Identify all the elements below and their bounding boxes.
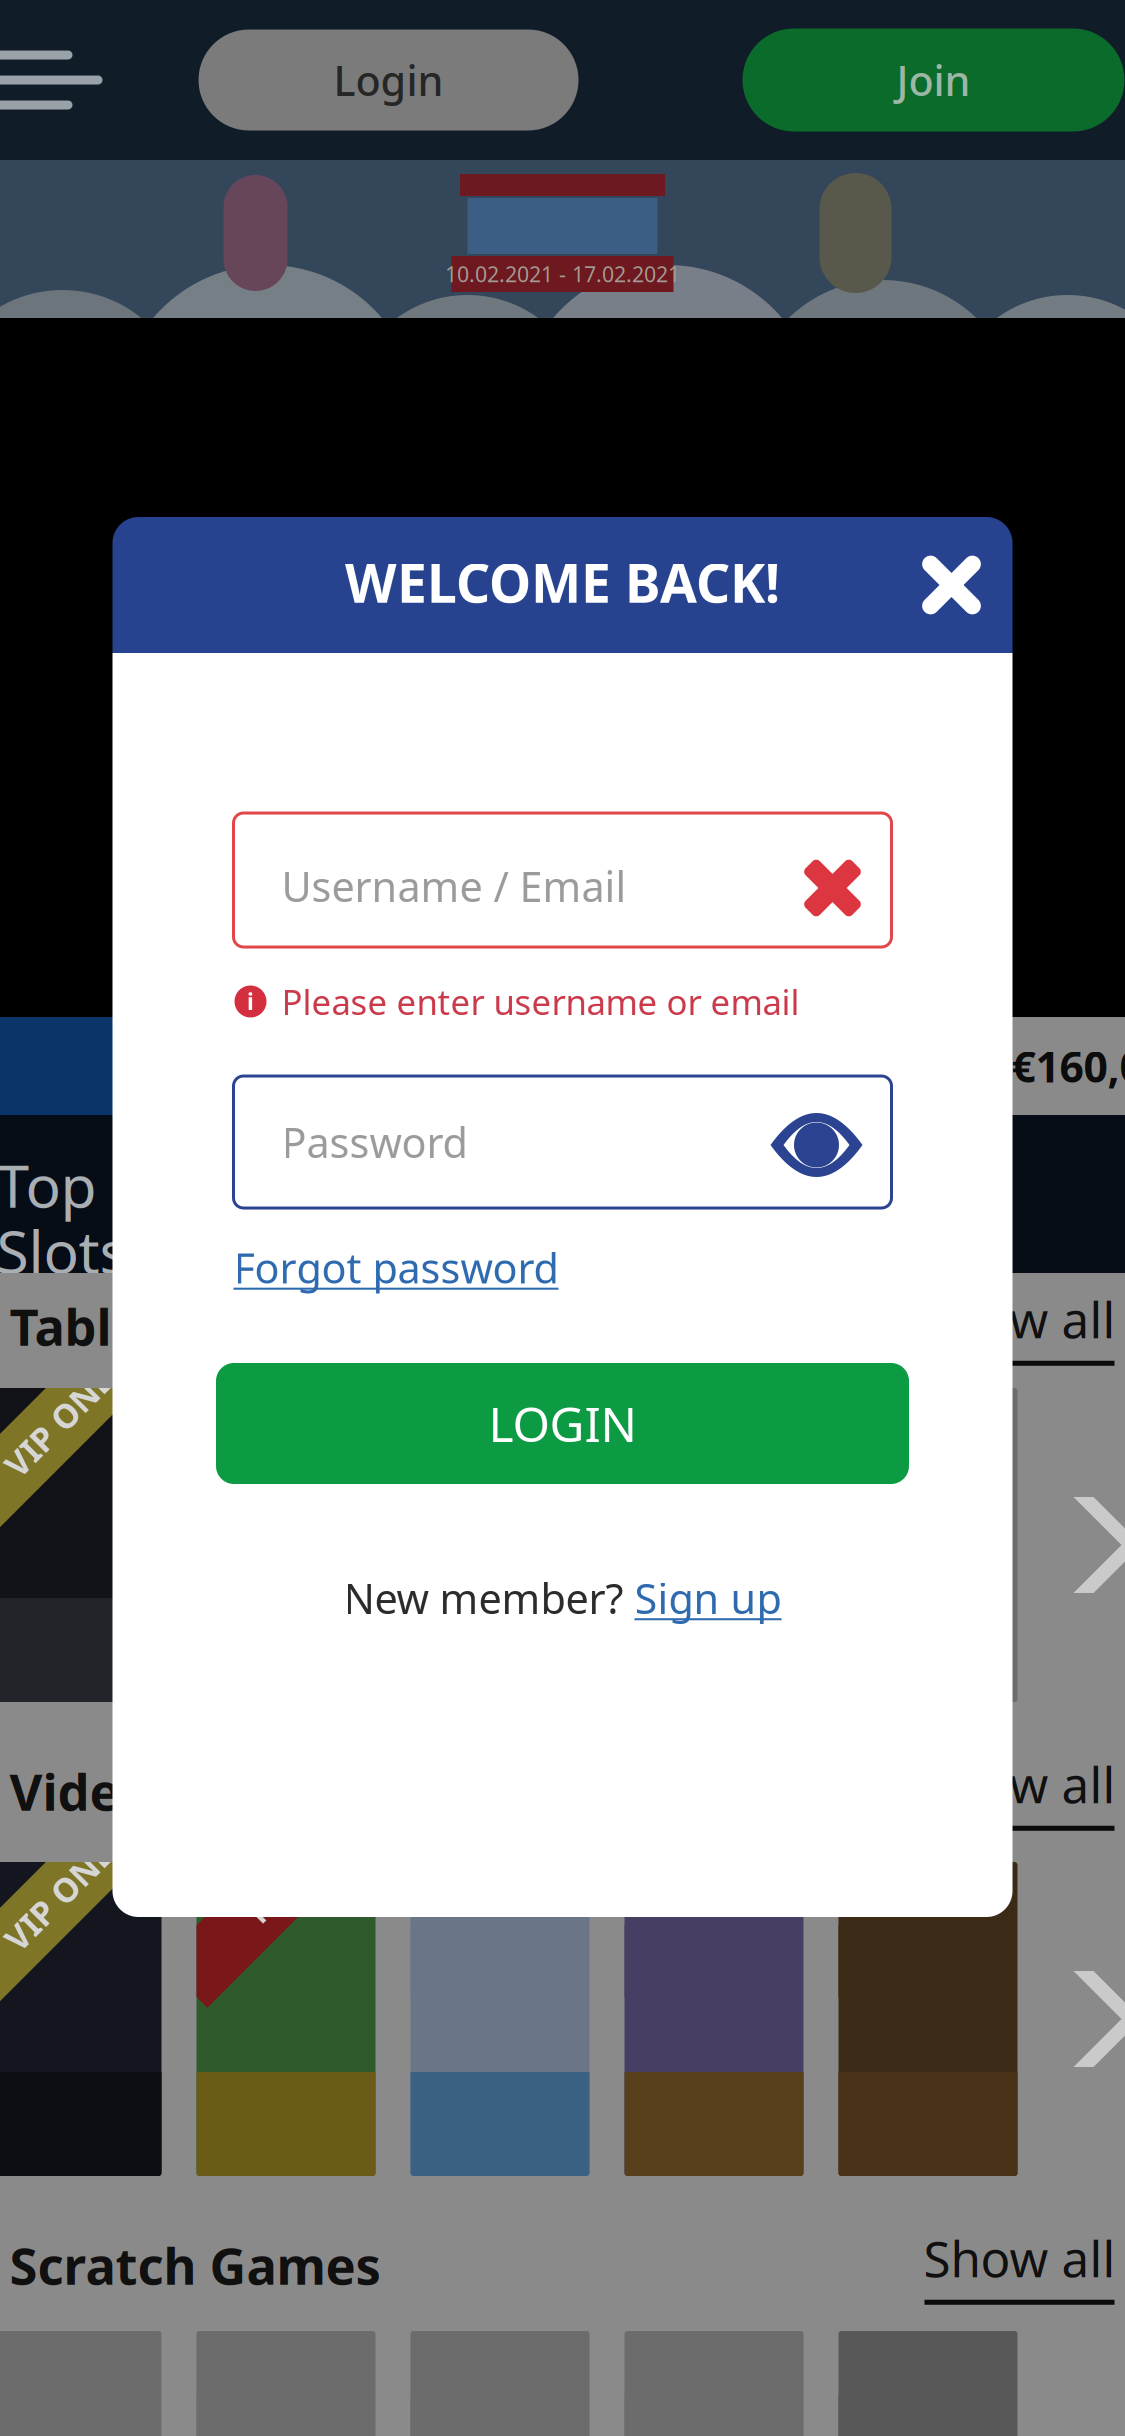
staticText: LOGIN bbox=[488, 1392, 636, 1455]
button[interactable]: Game 3 bbox=[410, 1862, 589, 2176]
button[interactable]: Next games bbox=[1063, 1967, 1125, 2071]
staticText: Table Games bbox=[9, 1292, 325, 1360]
staticText: Login bbox=[333, 53, 443, 107]
button[interactable]: Show password bbox=[769, 1112, 863, 1178]
staticText: Sign up bbox=[634, 1571, 781, 1625]
staticText: VIP ONLY bbox=[0, 1867, 144, 1911]
staticText: WELCOME BACK! bbox=[345, 547, 780, 617]
staticText: New member? bbox=[343, 1571, 634, 1625]
staticText: i bbox=[247, 986, 254, 1016]
button[interactable]: Game 5 bbox=[838, 1862, 1017, 2176]
button[interactable]: LOGIN bbox=[216, 1363, 909, 1484]
staticText: €160,000 bbox=[1011, 1038, 1125, 1094]
staticText: Join bbox=[896, 53, 970, 107]
button[interactable]: Game 1 bbox=[0, 1388, 161, 1702]
button[interactable]: Game 2 bbox=[196, 1862, 375, 2176]
staticText: Top Classic bbox=[0, 1146, 295, 1224]
button[interactable]: Game 4 bbox=[624, 1862, 803, 2176]
button[interactable]: Show all bbox=[923, 2225, 1125, 2305]
button[interactable]: Clear username bbox=[796, 852, 868, 924]
button[interactable]: Game 5 bbox=[838, 1388, 1017, 1702]
button[interactable]: Show all bbox=[923, 1751, 1125, 1831]
button[interactable]: Show all bbox=[923, 1286, 1125, 1366]
staticText: Show all bbox=[923, 1751, 1115, 1817]
staticText: Show all bbox=[923, 1286, 1115, 1352]
staticText: Scratch Games bbox=[9, 2231, 380, 2299]
staticText: VIP ONLY bbox=[0, 1393, 144, 1437]
button[interactable]: Sign up bbox=[634, 1571, 781, 1625]
staticText: Password bbox=[281, 1115, 467, 1169]
button[interactable]: Game 2 bbox=[196, 1388, 375, 1702]
button[interactable]: Next games bbox=[1063, 1493, 1125, 1597]
staticText: Video Slots bbox=[9, 1757, 286, 1825]
staticText: 10.02.2021 - 17.02.2021 bbox=[445, 260, 680, 288]
button[interactable]: Forgot password bbox=[233, 1240, 558, 1295]
button[interactable]: Game 3 bbox=[410, 1388, 589, 1702]
staticText: Slots bbox=[0, 1212, 127, 1290]
button[interactable]: Join bbox=[742, 28, 1124, 131]
button[interactable]: Close bbox=[907, 541, 995, 629]
staticText: Username / Email bbox=[281, 859, 626, 913]
button[interactable]: Login bbox=[198, 29, 578, 130]
button[interactable]: Menu bbox=[0, 0, 147, 160]
staticText: Show all bbox=[923, 2225, 1115, 2291]
staticText: Please enter username or email bbox=[281, 978, 799, 1024]
staticText: Forgot password bbox=[233, 1240, 558, 1295]
button[interactable]: Game 1 bbox=[0, 1862, 161, 2176]
button[interactable]: Game 4 bbox=[624, 1388, 803, 1702]
